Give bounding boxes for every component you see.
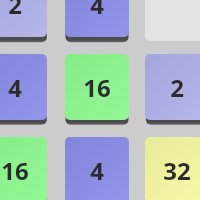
button[interactable]: 4	[0, 54, 47, 120]
button[interactable]: 2	[145, 54, 200, 120]
staticText: 4	[90, 0, 104, 21]
button[interactable]: 4	[65, 0, 129, 37]
staticText: 16	[83, 71, 111, 104]
button[interactable]: 16	[65, 54, 129, 120]
staticText: 32	[163, 154, 191, 187]
button[interactable]: 16	[0, 137, 47, 200]
staticText: 4	[8, 71, 22, 104]
button[interactable]: 4	[65, 137, 129, 200]
button[interactable]: 32	[145, 137, 200, 200]
button[interactable]: 2	[0, 0, 47, 37]
staticText: 4	[90, 154, 104, 187]
staticText: 2	[8, 0, 22, 21]
staticText: 16	[1, 154, 29, 187]
staticText: 2	[170, 71, 184, 104]
